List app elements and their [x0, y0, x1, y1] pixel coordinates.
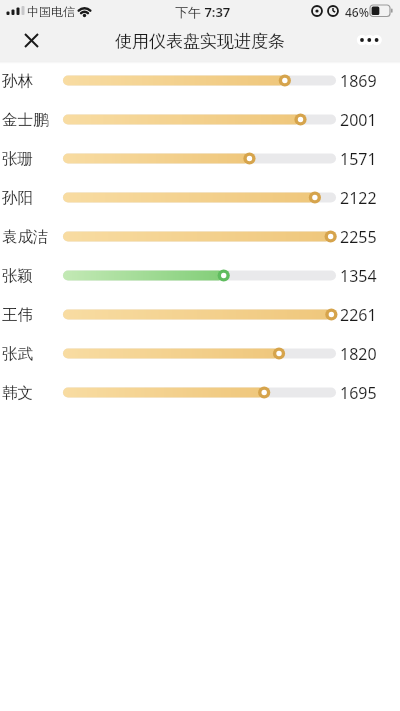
staticText: 1820	[340, 343, 377, 365]
staticText: 王伟	[2, 305, 33, 325]
staticText: 2255	[340, 226, 377, 248]
staticText: 2001	[340, 109, 377, 131]
staticText: 孙林	[2, 71, 33, 91]
staticText: 使用仪表盘实现进度条	[115, 31, 285, 52]
button[interactable]: 韩文	[0, 373, 400, 412]
button[interactable]: 金士鹏	[0, 100, 400, 139]
staticText: 1571	[340, 148, 377, 170]
staticText: 金士鹏	[2, 110, 49, 130]
staticText: 袁成洁	[2, 227, 49, 247]
button[interactable]: 张颖	[0, 256, 400, 295]
button[interactable]: 孙林	[0, 61, 400, 100]
staticText: 张珊	[2, 149, 33, 169]
staticText: 1869	[340, 70, 377, 92]
staticText: 1695	[340, 382, 377, 404]
staticText: 张颖	[2, 266, 33, 286]
button[interactable]: 孙阳	[0, 178, 400, 217]
button[interactable]	[17, 26, 45, 54]
button[interactable]: 袁成洁	[0, 217, 400, 256]
button[interactable]: 王伟	[0, 295, 400, 334]
button[interactable]: 张武	[0, 334, 400, 373]
staticText: 下午 7:37	[175, 3, 231, 21]
staticText: 2261	[340, 304, 377, 326]
staticText: 韩文	[2, 383, 33, 403]
staticText: 中国电信	[27, 4, 75, 19]
button[interactable]: 张珊	[0, 139, 400, 178]
staticText: 1354	[340, 265, 377, 287]
button[interactable]	[351, 32, 387, 50]
staticText: 孙阳	[2, 188, 33, 208]
staticText: 46%	[345, 4, 369, 20]
staticText: 2122	[340, 187, 377, 209]
staticText: 张武	[2, 344, 33, 364]
